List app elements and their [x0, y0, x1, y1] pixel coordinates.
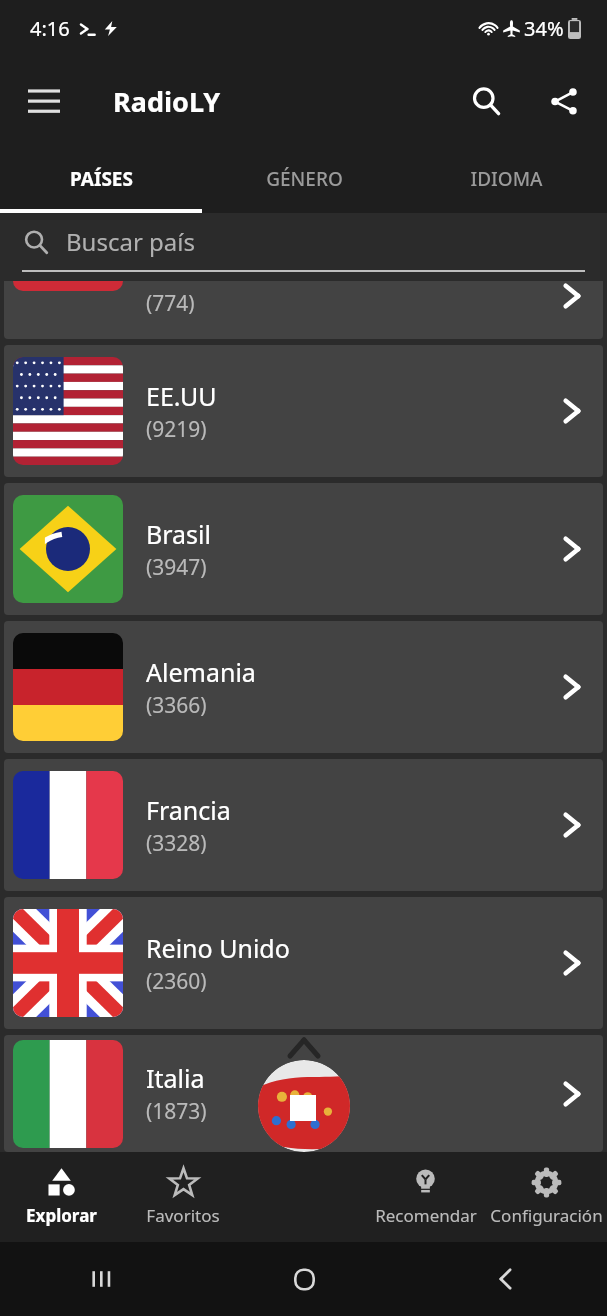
- staticText: (3366): [146, 691, 207, 720]
- staticText: Reino Unido: [146, 931, 290, 965]
- staticText: Brasil: [146, 517, 211, 551]
- staticText: (1873): [146, 1097, 207, 1126]
- button[interactable]: GÉNERO: [203, 145, 405, 213]
- button[interactable]: Configuración: [486, 1152, 607, 1242]
- staticText: (9219): [146, 415, 207, 444]
- staticText: Francia: [146, 793, 231, 827]
- button[interactable]: Reproductor: [258, 1060, 350, 1152]
- staticText: (2360): [146, 967, 207, 996]
- button[interactable]: Brasil: [4, 483, 603, 615]
- staticText: PAÍSES: [70, 166, 133, 192]
- button[interactable]: PAÍSES: [0, 145, 203, 213]
- button[interactable]: Recomendar: [365, 1152, 486, 1242]
- button[interactable]: Reino Unido: [4, 897, 603, 1029]
- staticText: 34%: [524, 15, 564, 42]
- staticText: 4:16: [30, 15, 70, 42]
- staticText: (3947): [146, 553, 207, 582]
- button[interactable]: EE.UU: [4, 345, 603, 477]
- button[interactable]: Alemania: [4, 621, 603, 753]
- staticText: GÉNERO: [266, 166, 343, 192]
- button[interactable]: Share: [535, 72, 593, 130]
- staticText: Alemania: [146, 655, 256, 689]
- other: Home: [291, 1266, 318, 1293]
- staticText: Explorar: [26, 1204, 97, 1227]
- button[interactable]: Favoritos: [122, 1152, 244, 1242]
- staticText: (3328): [146, 829, 207, 858]
- staticText: Italia: [146, 1061, 205, 1095]
- button[interactable]: Search: [457, 72, 515, 130]
- other: Recents: [89, 1266, 115, 1292]
- button[interactable]: IDIOMA: [405, 145, 607, 213]
- staticText: RadioLY: [113, 83, 221, 120]
- other: Back: [493, 1266, 519, 1292]
- staticText: Favoritos: [146, 1204, 220, 1227]
- staticText: Configuración: [490, 1204, 603, 1227]
- staticText: Recomendar: [375, 1204, 477, 1227]
- staticText: EE.UU: [146, 379, 217, 413]
- button[interactable]: Francia: [4, 759, 603, 891]
- staticText: (774): [146, 289, 195, 318]
- staticText: IDIOMA: [470, 166, 543, 192]
- button[interactable]: Menu: [14, 71, 74, 131]
- staticText: Buscar país: [66, 225, 195, 258]
- button[interactable]: (774): [4, 281, 603, 339]
- button[interactable]: Italia: [4, 1035, 603, 1152]
- button[interactable]: Explorar: [0, 1152, 122, 1242]
